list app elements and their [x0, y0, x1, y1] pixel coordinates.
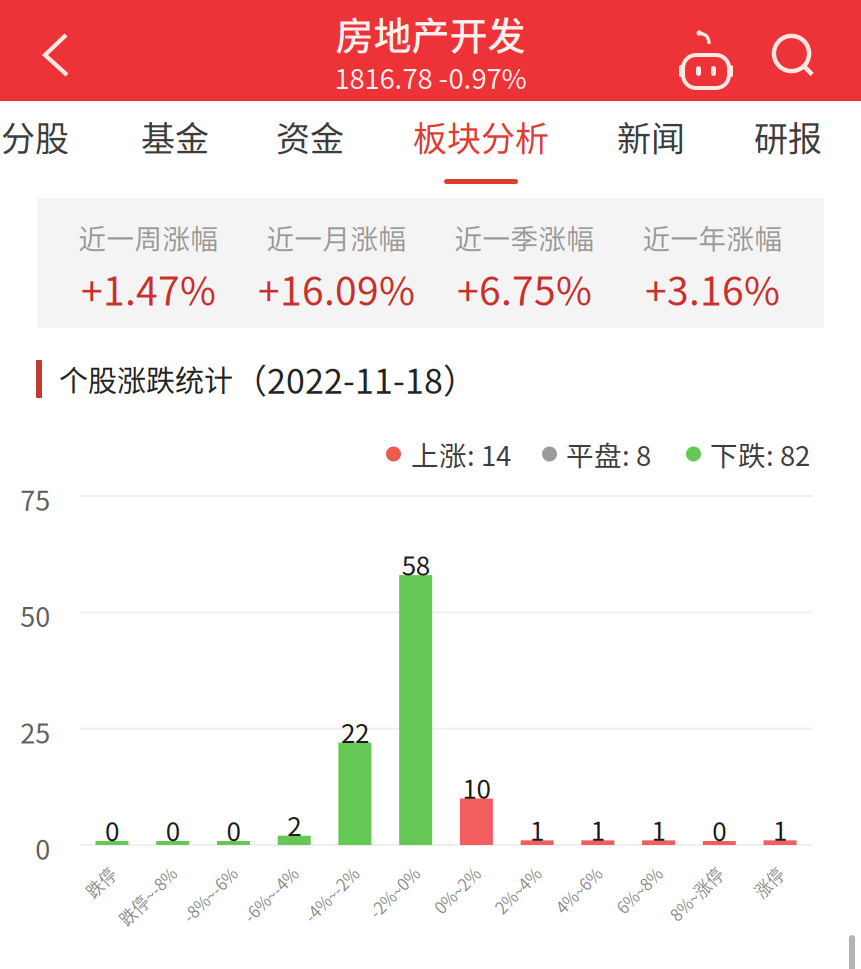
staticText: 10: [462, 769, 490, 806]
staticText: 0: [226, 811, 240, 849]
staticText: 1: [652, 810, 666, 848]
staticText: 50: [20, 596, 50, 635]
staticText: 资金: [276, 112, 344, 161]
staticText: 25: [20, 712, 50, 751]
staticText: 1: [530, 810, 544, 848]
staticText: （2022-11-18）: [233, 354, 477, 404]
staticText: 6%~8%: [593, 862, 650, 886]
staticText: -8%~-6%: [156, 862, 225, 886]
staticText: 涨停: [738, 862, 772, 886]
staticText: 近一周涨幅: [78, 217, 218, 257]
staticText: +3.16%: [645, 260, 780, 317]
staticText: 跌停: [70, 862, 104, 886]
staticText: 近一季涨幅: [454, 217, 594, 257]
staticText: 1816.78 -0.97%: [334, 57, 526, 97]
staticText: 0: [105, 811, 119, 849]
button[interactable]: 基金: [85, 101, 265, 198]
staticText: 下跌: 82: [710, 434, 810, 474]
staticText: 58: [402, 545, 430, 583]
staticText: 75: [20, 479, 50, 519]
staticText: -2%~0%: [344, 862, 407, 886]
button[interactable]: 资金: [220, 101, 400, 198]
staticText: 22: [341, 713, 369, 750]
staticText: 个股涨跌统计: [59, 358, 233, 400]
staticText: +16.09%: [258, 260, 415, 317]
button[interactable]: 成分股: [0, 101, 108, 198]
button[interactable]: AI assistant: [663, 7, 749, 108]
staticText: 平盘: 8: [566, 434, 651, 474]
staticText: -6%~-4%: [217, 862, 286, 886]
button[interactable]: 研报: [698, 101, 861, 198]
button[interactable]: Search: [750, 4, 836, 105]
staticText: 板块分析: [413, 112, 549, 161]
staticText: 研报: [754, 112, 822, 161]
staticText: 2%~4%: [472, 862, 529, 886]
staticText: 0: [712, 811, 726, 849]
staticText: +1.47%: [81, 260, 216, 317]
staticText: -4%~-2%: [277, 862, 346, 886]
staticText: 近一年涨幅: [642, 217, 782, 257]
staticText: 成分股: [0, 112, 69, 161]
staticText: 跌停~-8%: [91, 862, 164, 886]
staticText: 近一月涨幅: [266, 217, 406, 257]
staticText: 新闻: [617, 112, 685, 161]
staticText: 1: [591, 810, 605, 848]
staticText: 0: [35, 828, 50, 868]
staticText: 1: [773, 810, 787, 848]
staticText: 基金: [141, 112, 209, 161]
staticText: 0%~2%: [411, 862, 468, 886]
staticText: +6.75%: [457, 260, 592, 317]
button[interactable]: 新闻: [561, 101, 741, 198]
staticText: 2: [287, 806, 301, 843]
button[interactable]: 板块分析: [391, 101, 571, 198]
staticText: 0: [166, 811, 180, 849]
button[interactable]: Back: [2, 4, 110, 105]
staticText: 房地产开发: [335, 5, 525, 60]
staticText: 8%~涨停: [644, 862, 711, 886]
staticText: 上涨: 14: [411, 434, 511, 474]
staticText: 4%~6%: [532, 862, 589, 886]
